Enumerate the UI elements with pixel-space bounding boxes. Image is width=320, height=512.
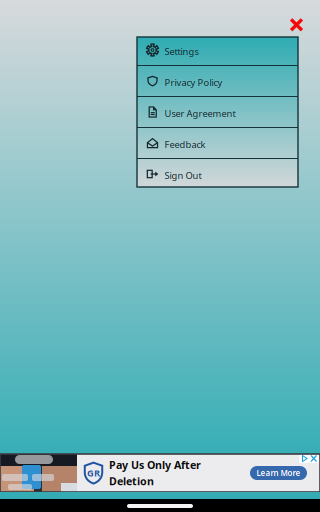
staticText: Learn More <box>256 468 300 478</box>
staticText: Sign Out <box>164 169 201 182</box>
button[interactable]: Privacy Policy <box>137 66 298 96</box>
staticText: Pay Us Only After <box>109 458 201 472</box>
button[interactable]: User Agreement <box>137 97 298 127</box>
button[interactable]: Feedback <box>137 128 298 158</box>
button[interactable]: Sign Out <box>137 159 298 189</box>
staticText: Settings <box>164 45 198 58</box>
button[interactable]: GR <box>0 454 320 492</box>
button[interactable]: Close menu <box>284 13 309 37</box>
staticText: Feedback <box>164 138 205 151</box>
staticText: GR <box>87 467 100 479</box>
staticText: Deletion <box>109 474 154 488</box>
button[interactable]: Settings <box>137 35 298 65</box>
staticText: Privacy Policy <box>164 76 222 89</box>
staticText: User Agreement <box>164 107 235 120</box>
